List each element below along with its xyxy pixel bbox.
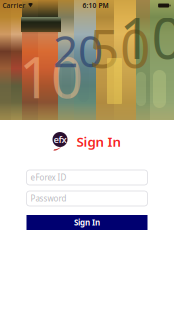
staticText: 6:10 PM <box>82 1 108 10</box>
staticText: 50 <box>89 12 151 83</box>
staticText: Carrier <box>2 1 25 10</box>
staticText: efx <box>53 133 66 146</box>
staticText: Password <box>30 193 66 204</box>
staticText: Sign In <box>74 217 100 228</box>
button[interactable]: eForex ID <box>26 170 147 185</box>
staticText: 20 <box>53 21 103 79</box>
button[interactable]: Password <box>26 191 147 206</box>
staticText: Sign In <box>76 133 121 150</box>
button[interactable]: Sign In <box>26 215 147 230</box>
staticText: 10 <box>19 39 83 114</box>
staticText: 10 <box>119 0 174 74</box>
staticText: eForex ID <box>30 172 66 183</box>
